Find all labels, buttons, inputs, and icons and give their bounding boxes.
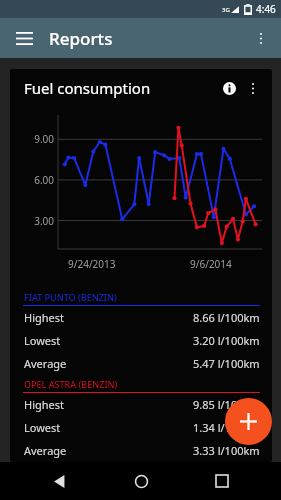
staticText: 3.20 l/100km — [193, 333, 260, 348]
button[interactable]: Home — [119, 462, 163, 500]
button[interactable]: Average — [10, 439, 272, 462]
button[interactable]: Lowest — [10, 416, 272, 439]
staticText: 9/6/2014 — [190, 257, 232, 271]
staticText: 9.85 l/100km — [193, 397, 260, 412]
staticText: 1.34 l/100km — [193, 420, 260, 435]
staticText: Average — [24, 443, 67, 458]
button[interactable]: More options — [245, 22, 277, 54]
button[interactable]: Lowest — [10, 329, 272, 352]
button[interactable]: Highest — [10, 393, 272, 416]
staticText: Average — [24, 356, 67, 371]
staticText: 9.00 — [18, 132, 54, 146]
staticText: Lowest — [24, 420, 61, 435]
staticText: Highest — [24, 310, 64, 325]
staticText: 6.00 — [18, 173, 54, 187]
staticText: Fuel consumption — [24, 78, 151, 98]
button[interactable]: Highest — [10, 306, 272, 329]
button[interactable]: Chart options — [242, 77, 264, 99]
staticText: 3.00 — [18, 214, 54, 228]
staticText: 9/24/2013 — [68, 257, 116, 271]
button[interactable]: Average — [10, 352, 272, 375]
button[interactable]: Back — [37, 462, 81, 500]
staticText: Reports — [49, 27, 113, 50]
staticText: Lowest — [24, 333, 61, 348]
button[interactable]: Recent apps — [200, 462, 244, 500]
staticText: 5.47 l/100km — [193, 356, 260, 371]
staticText: FIAT PUNTO (BENZIN) — [24, 291, 117, 303]
staticText: 8.66 l/100km — [193, 310, 260, 325]
staticText: 3.33 l/100km — [193, 443, 260, 458]
button[interactable]: Add — [225, 398, 272, 445]
staticText: 4:46 — [256, 2, 276, 16]
button[interactable]: Information — [216, 75, 242, 101]
staticText: 3G — [222, 6, 230, 14]
button[interactable]: Open navigation drawer — [8, 22, 40, 54]
staticText: Highest — [24, 397, 64, 412]
staticText: OPEL ASTRA (BENZIN) — [24, 378, 118, 390]
